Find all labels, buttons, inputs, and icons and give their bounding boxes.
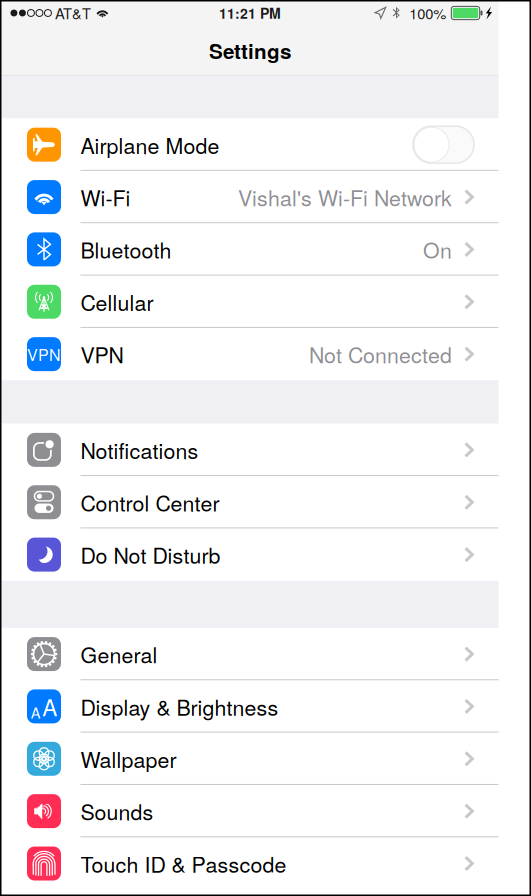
staticText: Notifications [80,435,198,465]
staticText: AT&T [55,2,91,23]
staticText: VPN [80,339,123,369]
staticText: General [80,639,157,669]
staticText: Settings [209,36,291,65]
button[interactable]: Wallpaper [1,733,498,785]
button[interactable]: Do Not Disturb [1,528,498,581]
staticText: Bluetooth [80,234,171,265]
staticText: Vishal's Wi-Fi Network [238,182,452,212]
staticText: Cellular [80,286,153,317]
button[interactable]: Wi-Fi [1,171,498,223]
staticText: Display & Brightness [80,691,278,722]
staticText: Do Not Disturb [80,539,220,570]
staticText: Airplane Mode [80,129,219,160]
staticText: Sounds [80,796,153,826]
staticText: VPN [27,343,61,366]
button[interactable]: General [1,628,498,680]
staticText: A [42,690,57,723]
button[interactable]: Control Center [1,476,498,528]
staticText: Touch ID & Passcode [80,848,286,879]
staticText: Wallpaper [80,743,176,774]
staticText: Wi-Fi [80,182,130,212]
staticText: On [423,234,452,265]
button[interactable]: Touch ID & Passcode [1,837,498,890]
staticText: A [31,702,41,723]
staticText: 11:21 PM [219,3,281,23]
button[interactable]: Sounds [1,785,498,837]
button[interactable]: Notifications [1,424,498,476]
button[interactable]: Cellular [1,276,498,328]
staticText: Control Center [80,487,219,517]
staticText: Not Connected [309,339,452,369]
button[interactable]: VPN [1,328,498,380]
button[interactable]: Bluetooth [1,223,498,276]
button[interactable]: Airplane Mode [1,118,498,171]
button[interactable]: A [1,680,498,733]
staticText: 100% [409,2,446,23]
